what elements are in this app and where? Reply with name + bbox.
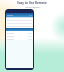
button[interactable]: [6, 38, 33, 40]
staticText: Easy to Use Remote: [17, 1, 47, 5]
staticText: IR to Control: [25, 5, 40, 8]
button[interactable]: [6, 25, 33, 28]
button[interactable]: [6, 35, 33, 38]
button[interactable]: [6, 32, 33, 35]
button[interactable]: [6, 28, 33, 31]
button[interactable]: [6, 22, 33, 25]
button[interactable]: [6, 13, 33, 17]
button[interactable]: [6, 19, 33, 22]
